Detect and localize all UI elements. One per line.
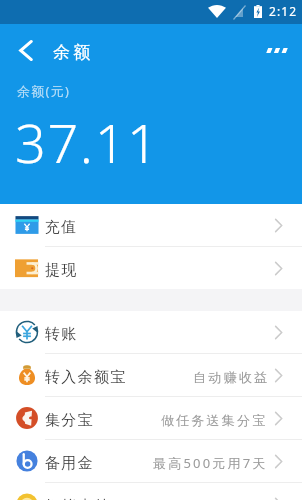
staticText: 充值 — [45, 218, 78, 237]
staticText: 自动赚收益 — [192, 369, 268, 385]
staticText: 余额 — [53, 42, 94, 63]
staticText: 37.11 — [15, 105, 160, 179]
button[interactable]: 转账 — [0, 311, 302, 353]
button[interactable]: 提现 — [0, 247, 302, 289]
staticText: 提现 — [45, 261, 78, 280]
staticText: 备用金 — [45, 454, 94, 473]
staticText: 2:12 — [269, 3, 298, 19]
staticText: 蚂蚁森林 — [45, 497, 111, 500]
button[interactable]: 转入余额宝 — [0, 354, 302, 396]
staticText: 集分宝 — [45, 411, 94, 430]
button[interactable]: Back — [9, 33, 43, 67]
staticText: 余额(元) — [17, 82, 71, 100]
staticText: 转账 — [45, 325, 78, 344]
staticText: 最高500元用7天 — [153, 454, 268, 472]
button[interactable]: 集分宝 — [0, 397, 302, 439]
button[interactable]: 备用金 — [0, 440, 302, 482]
button[interactable]: 蚂蚁森林 — [0, 483, 302, 500]
button[interactable]: More options — [259, 32, 295, 68]
button[interactable]: 充值 — [0, 204, 302, 246]
staticText: 转入余额宝 — [45, 368, 127, 387]
staticText: 做任务送集分宝 — [161, 412, 268, 428]
